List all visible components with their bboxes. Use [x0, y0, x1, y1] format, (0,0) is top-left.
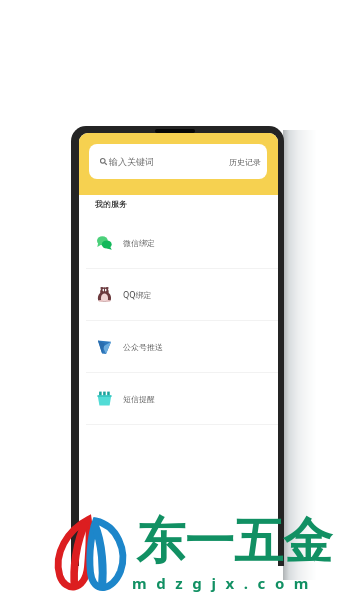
- staticText: 公众号推送: [123, 342, 163, 352]
- staticText: mdzgjx.com: [132, 573, 319, 593]
- button[interactable]: 输入关键词: [89, 144, 267, 179]
- button[interactable]: 短信提醒: [79, 373, 278, 424]
- button[interactable]: QQ绑定: [79, 269, 278, 320]
- staticText: QQ绑定: [123, 289, 152, 300]
- staticText: 微信绑定: [123, 238, 155, 248]
- button[interactable]: 微信绑定: [79, 217, 278, 268]
- button[interactable]: 公众号推送: [79, 321, 278, 372]
- staticText: 历史记录: [229, 157, 261, 167]
- staticText: 输入关键词: [109, 156, 154, 167]
- staticText: 我的服务: [95, 199, 127, 209]
- staticText: 东一五金: [136, 511, 332, 573]
- staticText: 短信提醒: [123, 394, 155, 404]
